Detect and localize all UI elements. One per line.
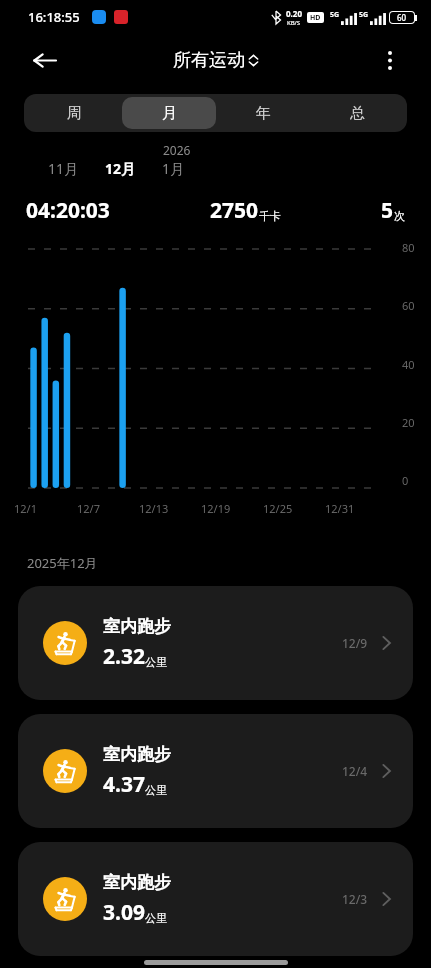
button[interactable]: 1月 (162, 159, 185, 178)
staticText: 80 (402, 240, 415, 255)
staticText: 所有运动 (173, 49, 245, 72)
staticText: 04:20:03 (26, 196, 110, 225)
staticText: 公里 (145, 783, 167, 797)
staticText: 12/13 (139, 501, 169, 516)
staticText: HD (310, 13, 321, 23)
staticText: 12/25 (263, 501, 293, 516)
button[interactable]: More options (369, 39, 411, 81)
button[interactable]: Back (22, 38, 66, 82)
button[interactable]: 年 (216, 97, 310, 129)
staticText: 60 (402, 298, 415, 313)
staticText: 2026 (163, 142, 191, 158)
staticText: 公里 (145, 655, 167, 669)
button[interactable]: 周 (27, 97, 122, 129)
staticText: 20 (402, 415, 415, 430)
staticText: 16:18:55 (28, 8, 80, 26)
button[interactable]: 11月 (48, 159, 79, 178)
staticText: 次 (394, 209, 405, 223)
staticText: 40 (402, 357, 415, 372)
staticText: 室内跑步 (103, 616, 171, 637)
button[interactable]: 所有运动 (167, 45, 265, 76)
staticText: 2750 (210, 196, 259, 225)
button[interactable]: 室内跑步 (18, 714, 413, 828)
staticText: 12/31 (325, 501, 355, 516)
staticText: 4.37 (103, 770, 145, 799)
staticText: 千卡 (259, 209, 281, 223)
staticText: 公里 (145, 911, 167, 925)
staticText: 2.32 (103, 642, 145, 671)
staticText: 年 (256, 104, 271, 123)
button[interactable]: 12月 (105, 159, 136, 178)
staticText: 室内跑步 (103, 744, 171, 765)
staticText: 12/3 (342, 891, 368, 907)
staticText: 5G (359, 10, 369, 20)
button[interactable]: 总 (310, 97, 404, 129)
staticText: 室内跑步 (103, 872, 171, 893)
staticText: 12/7 (77, 501, 100, 516)
staticText: 周 (67, 104, 82, 123)
staticText: 总 (350, 104, 365, 123)
button[interactable]: 室内跑步 (18, 842, 413, 956)
staticText: 12/1 (14, 501, 37, 516)
staticText: 0 (402, 473, 409, 488)
staticText: 2025年12月 (27, 554, 98, 572)
staticText: 60 (397, 12, 407, 23)
staticText: 12/19 (201, 501, 231, 516)
staticText: 3.09 (103, 898, 145, 927)
staticText: 月 (162, 104, 177, 123)
staticText: 5 (381, 196, 394, 225)
staticText: 0.20 (286, 8, 302, 19)
staticText: KB/S (287, 19, 301, 27)
staticText: 5G (330, 10, 340, 20)
staticText: 12/4 (342, 763, 368, 779)
staticText: 12/9 (342, 635, 368, 651)
button[interactable]: 室内跑步 (18, 586, 413, 700)
button[interactable]: 月 (122, 97, 216, 129)
